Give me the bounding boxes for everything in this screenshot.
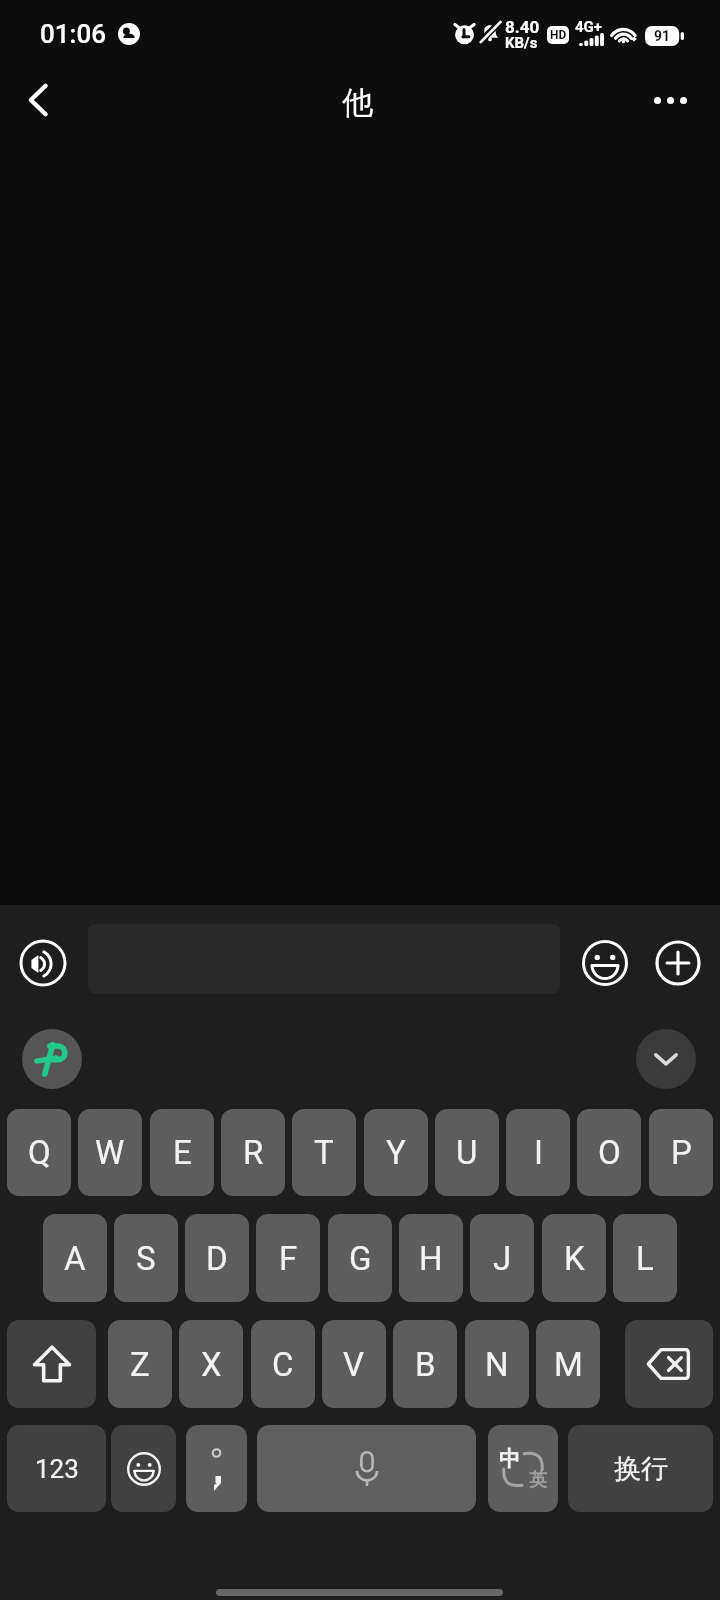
button[interactable]: C [251, 1320, 315, 1408]
button[interactable]: More options [641, 71, 699, 129]
staticText: 4G+ [575, 18, 603, 36]
button[interactable]: X [179, 1320, 243, 1408]
staticText: B [415, 1345, 436, 1384]
staticText: 123 [35, 1454, 79, 1484]
button[interactable]: Switch Chinese English [488, 1425, 558, 1512]
button[interactable]: Comma [186, 1425, 247, 1512]
button[interactable]: U [435, 1109, 499, 1196]
button[interactable]: T [292, 1109, 356, 1196]
staticText: Y [386, 1133, 406, 1172]
staticText: 换行 [614, 1452, 668, 1486]
button[interactable]: E [150, 1109, 214, 1196]
button[interactable]: More [655, 940, 701, 986]
button[interactable]: L [613, 1214, 677, 1302]
button[interactable]: Input method [22, 1029, 82, 1089]
staticText: 他 [342, 83, 373, 122]
staticText: 01:06 [40, 19, 106, 49]
button[interactable]: 换行 [568, 1425, 713, 1512]
button[interactable]: Y [364, 1109, 428, 1196]
staticText: D [206, 1239, 228, 1278]
staticText: M [554, 1345, 583, 1384]
button[interactable]: V [322, 1320, 386, 1408]
staticText: I [534, 1133, 543, 1172]
button[interactable]: H [399, 1214, 463, 1302]
button[interactable]: Hide keyboard [636, 1029, 696, 1089]
staticText: J [493, 1239, 512, 1278]
staticText: X [201, 1345, 222, 1384]
button[interactable]: J [470, 1214, 534, 1302]
button[interactable]: P [649, 1109, 713, 1196]
staticText: U [456, 1133, 478, 1172]
button[interactable]: G [328, 1214, 392, 1302]
button[interactable]: Backspace [625, 1320, 713, 1408]
staticText: W [95, 1133, 125, 1172]
staticText: V [343, 1345, 365, 1384]
staticText: 中 [499, 1446, 520, 1472]
staticText: S [136, 1239, 156, 1278]
staticText: P [671, 1133, 692, 1172]
staticText: E [173, 1133, 192, 1172]
staticText: KB/s [505, 34, 538, 52]
button[interactable]: Voice input [19, 939, 67, 987]
button[interactable]: S [114, 1214, 178, 1302]
staticText: 91 [654, 28, 671, 44]
button[interactable]: A [43, 1214, 107, 1302]
button[interactable]: R [221, 1109, 285, 1196]
button[interactable]: F [256, 1214, 320, 1302]
staticText: Q [28, 1133, 51, 1172]
button[interactable]: 123 [7, 1425, 106, 1512]
staticText: G [349, 1239, 372, 1278]
staticText: C [272, 1345, 294, 1384]
button[interactable]: Z [108, 1320, 172, 1408]
button[interactable]: Space, voice input [257, 1425, 476, 1512]
button[interactable]: Emoji [581, 939, 629, 987]
button[interactable]: W [78, 1109, 142, 1196]
button[interactable]: Shift [7, 1320, 96, 1408]
button[interactable]: O [577, 1109, 641, 1196]
staticText: L [636, 1239, 654, 1278]
button[interactable]: N [465, 1320, 529, 1408]
button[interactable]: Emoji [111, 1425, 176, 1512]
button[interactable]: Back [10, 72, 66, 128]
staticText: T [314, 1133, 334, 1172]
staticText: A [64, 1239, 86, 1278]
button[interactable]: K [542, 1214, 606, 1302]
button[interactable]: M [536, 1320, 600, 1408]
staticText: 8.40 [505, 17, 540, 37]
staticText: K [564, 1239, 585, 1278]
staticText: HD [550, 28, 567, 42]
staticText: F [279, 1239, 298, 1278]
button[interactable]: B [393, 1320, 457, 1408]
button[interactable]: Q [7, 1109, 71, 1196]
button[interactable]: I [506, 1109, 570, 1196]
staticText: H [419, 1239, 443, 1278]
staticText: R [243, 1133, 264, 1172]
staticText: N [485, 1345, 509, 1384]
staticText: 英 [529, 1469, 547, 1492]
staticText: Z [130, 1345, 150, 1384]
button[interactable]: D [185, 1214, 249, 1302]
staticText: O [598, 1133, 621, 1172]
